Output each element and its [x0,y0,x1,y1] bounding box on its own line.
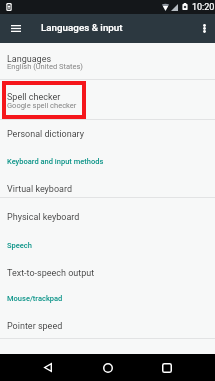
staticText: 10:20 [192,2,215,13]
button[interactable]: Back [28,354,68,381]
staticText: Virtual keyboard [7,184,72,195]
button[interactable]: Personal dictionary [0,120,215,147]
staticText: Physical keyboard [7,212,80,223]
staticText: English (United States) [7,62,83,71]
staticText: Personal dictionary [7,129,85,140]
staticText: Google spell checker [7,101,77,110]
button[interactable]: Virtual keyboard [0,174,215,197]
button[interactable]: Spell checker [0,80,215,119]
staticText: Languages & input [41,22,123,33]
staticText: Mouse/trackpad [7,294,63,303]
staticText: Pointer speed [7,321,63,332]
staticText: Speech [7,241,32,250]
button[interactable]: Open navigation drawer [0,14,31,43]
staticText: Languages [7,54,52,65]
button[interactable]: Pointer speed [0,310,215,338]
button[interactable]: Physical keyboard [0,198,215,230]
button[interactable]: Languages [0,43,215,79]
staticText: Text-to-speech output [7,268,95,279]
staticText: Keyboard and input methods [7,157,104,166]
button[interactable]: More options [193,14,215,43]
button[interactable]: Text-to-speech output [0,256,215,285]
staticText: Spell checker [7,92,61,103]
button[interactable]: Recent apps [147,354,187,381]
button[interactable]: Home [88,354,128,381]
